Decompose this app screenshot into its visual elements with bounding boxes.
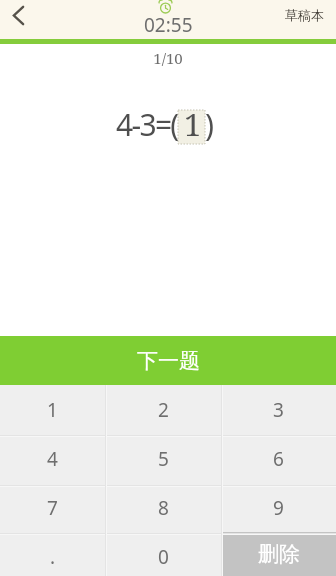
staticText: 02:55 <box>144 12 193 38</box>
staticText: 下一题 <box>137 348 200 374</box>
staticText: 1 <box>184 103 200 145</box>
button[interactable]: 3 <box>221 385 336 434</box>
button[interactable]: 下一题 <box>0 336 336 385</box>
staticText: 6 <box>273 446 284 472</box>
button[interactable]: 6 <box>221 434 336 483</box>
staticText: ) <box>205 104 213 145</box>
staticText: 1/10 <box>0 48 336 68</box>
button[interactable]: 7 <box>0 483 105 532</box>
button[interactable]: 2 <box>105 385 221 434</box>
button[interactable]: 1 <box>0 385 105 434</box>
button[interactable]: 0 <box>105 532 221 576</box>
button[interactable]: 删除 <box>221 532 336 576</box>
staticText: . <box>50 544 56 570</box>
staticText: 4-3=( <box>116 104 178 145</box>
staticText: 4 <box>47 446 58 472</box>
button[interactable]: 9 <box>221 483 336 532</box>
button[interactable]: 草稿本 <box>285 0 324 39</box>
staticText: 9 <box>273 495 284 521</box>
staticText: 8 <box>158 495 169 521</box>
staticText: 2 <box>158 397 169 423</box>
button[interactable]: 8 <box>105 483 221 532</box>
staticText: 草稿本 <box>285 7 324 23</box>
button[interactable]: . <box>0 532 105 576</box>
button[interactable]: Back <box>0 0 36 39</box>
button[interactable]: 4 <box>0 434 105 483</box>
staticText: 3 <box>273 397 284 423</box>
staticText: 0 <box>158 544 169 570</box>
staticText: 7 <box>47 495 58 521</box>
button[interactable]: 5 <box>105 434 221 483</box>
staticText: 1 <box>47 397 58 423</box>
staticText: 5 <box>158 446 169 472</box>
staticText: 删除 <box>258 541 300 567</box>
